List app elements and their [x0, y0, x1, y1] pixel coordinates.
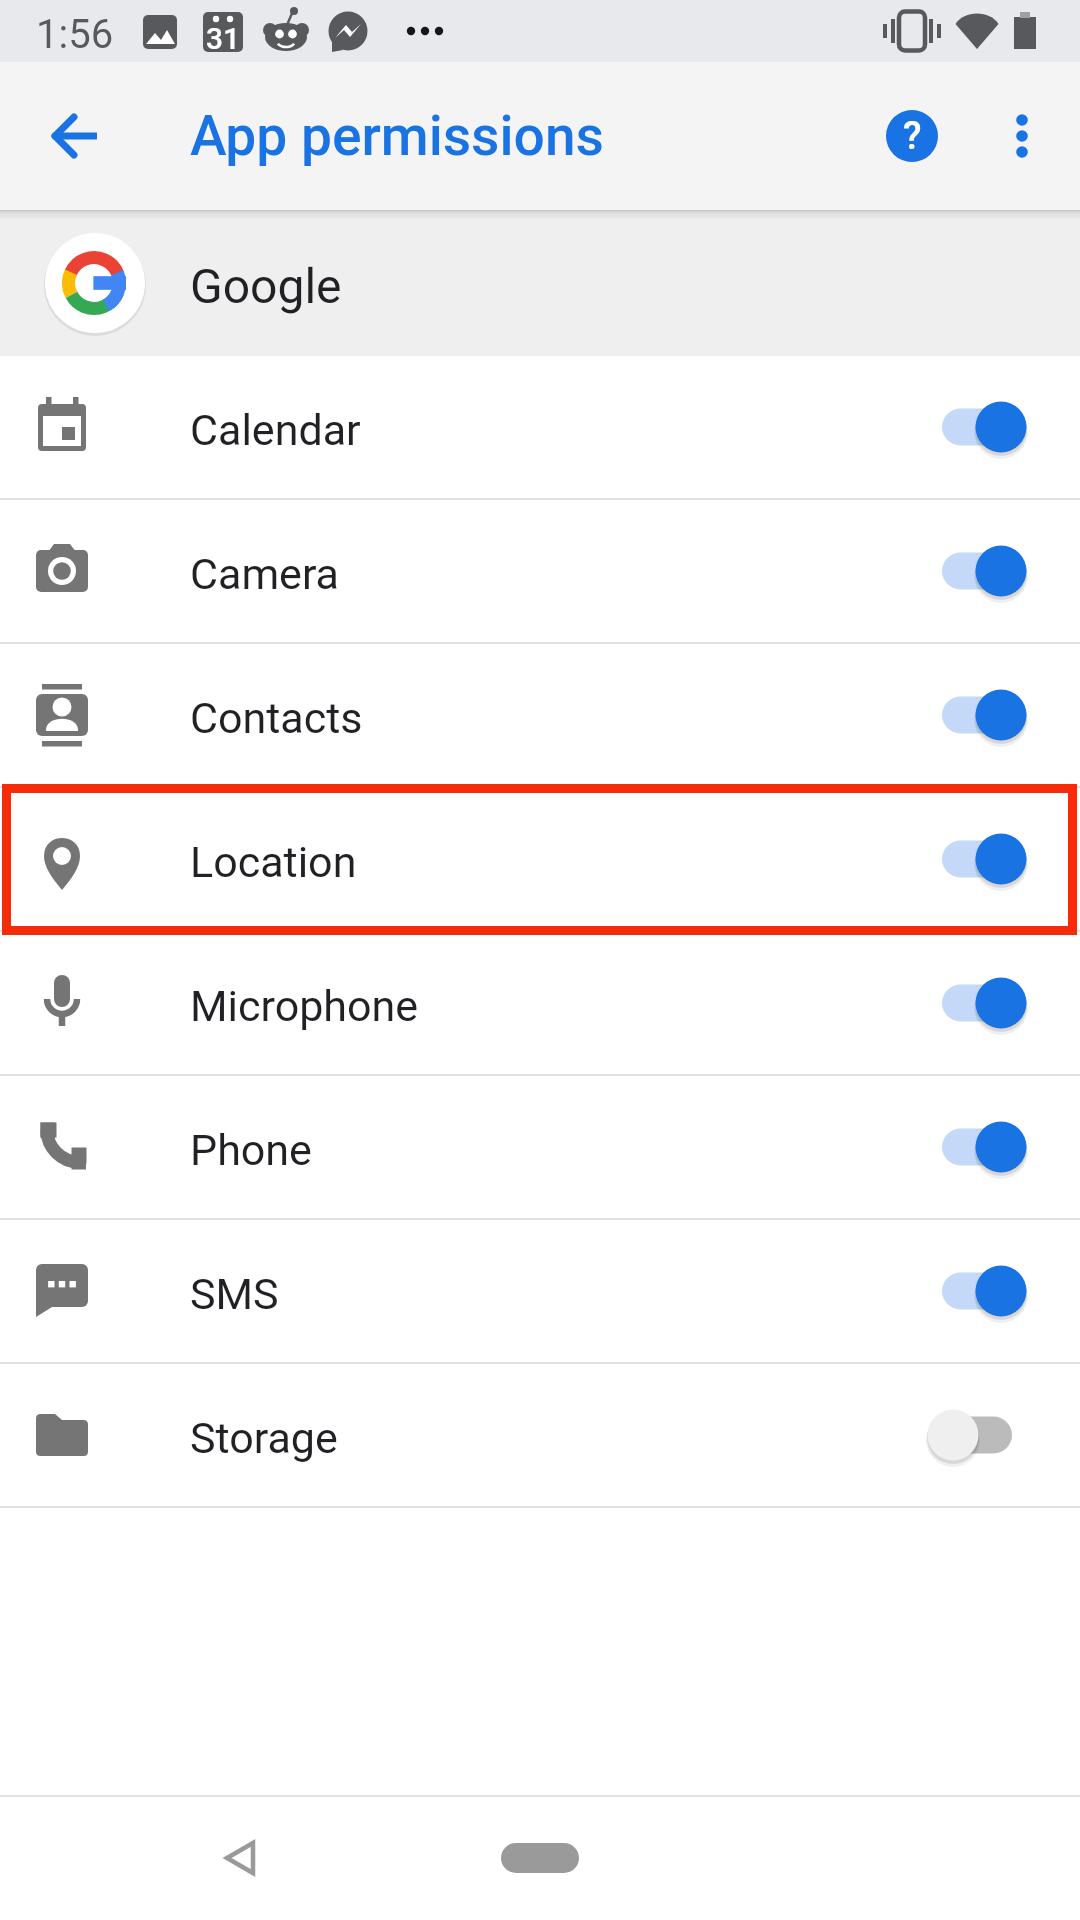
staticText: Camera — [190, 549, 340, 599]
staticText: ? — [903, 114, 922, 159]
button[interactable]: More options — [964, 62, 1080, 210]
button[interactable]: Back — [180, 1798, 300, 1918]
button[interactable]: Phone — [0, 1076, 1080, 1220]
staticText: App permissions — [190, 104, 604, 168]
button[interactable]: SMS — [0, 1220, 1080, 1364]
button[interactable]: Calendar — [0, 356, 1080, 500]
staticText: Contacts — [190, 693, 363, 743]
staticText: 31 — [206, 21, 241, 56]
button[interactable]: Home — [480, 1798, 600, 1918]
staticText: Storage — [190, 1413, 338, 1463]
staticText: Calendar — [190, 405, 361, 455]
staticText: SMS — [190, 1269, 279, 1319]
button[interactable]: Location — [0, 788, 1080, 932]
staticText: 1:56 — [36, 11, 114, 58]
button[interactable]: Back — [0, 62, 148, 210]
staticText: Phone — [190, 1125, 312, 1175]
staticText: Location — [190, 837, 357, 887]
button[interactable]: Camera — [0, 500, 1080, 644]
button[interactable]: Microphone — [0, 932, 1080, 1076]
button[interactable]: Storage — [0, 1364, 1080, 1508]
staticText: Google — [190, 258, 342, 314]
button[interactable]: Contacts — [0, 644, 1080, 788]
staticText: Microphone — [190, 981, 419, 1031]
button[interactable]: Help — [864, 88, 960, 184]
